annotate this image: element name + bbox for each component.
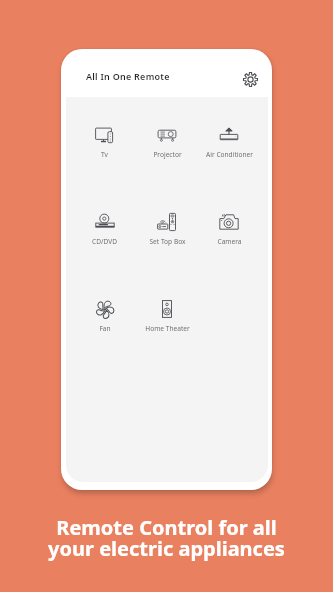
button[interactable]: Tv (73, 124, 136, 211)
staticText: Fan (99, 324, 111, 333)
staticText: All In One Remote (86, 70, 170, 82)
button[interactable]: Air Conditioner (198, 124, 260, 211)
staticText: Tv (101, 150, 108, 159)
staticText: Remote Control for all your electric app… (0, 514, 333, 562)
button[interactable]: Projector (136, 124, 198, 211)
button[interactable]: Settings (240, 69, 260, 89)
button[interactable]: Fan (73, 298, 136, 385)
button[interactable]: Home Theater (136, 298, 198, 385)
staticText: Home Theater (145, 324, 190, 333)
staticText: CD/DVD (92, 237, 117, 246)
staticText: Air Conditioner (206, 150, 253, 159)
button[interactable]: Camera (198, 211, 260, 298)
staticText: Set Top Box (149, 237, 186, 246)
button[interactable]: CD/DVD (73, 211, 136, 298)
staticText: Camera (217, 237, 242, 246)
staticText: Projector (153, 150, 182, 159)
button[interactable]: Set Top Box (136, 211, 198, 298)
